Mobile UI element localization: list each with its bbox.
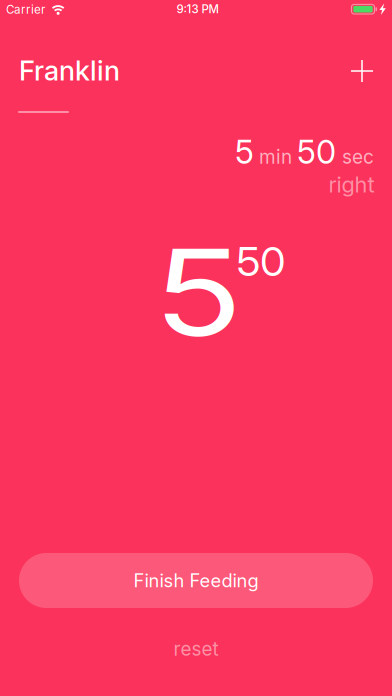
staticText: Carrier [6, 2, 45, 16]
staticText: sec [342, 145, 374, 168]
staticText: 9:13 PM [176, 2, 218, 16]
staticText: right [328, 171, 374, 198]
staticText: reset [173, 638, 218, 660]
staticText: Finish Feeding [133, 569, 258, 591]
staticText: Franklin [19, 54, 120, 87]
staticText: 5 [235, 132, 254, 171]
staticText: 50 [297, 132, 336, 171]
button[interactable]: Finish Feeding [19, 553, 373, 608]
button[interactable]: Add feeding [340, 49, 384, 93]
staticText: 50 [238, 239, 284, 285]
button[interactable]: reset [136, 629, 256, 669]
staticText: 5 [161, 219, 234, 365]
staticText: min [259, 145, 292, 168]
